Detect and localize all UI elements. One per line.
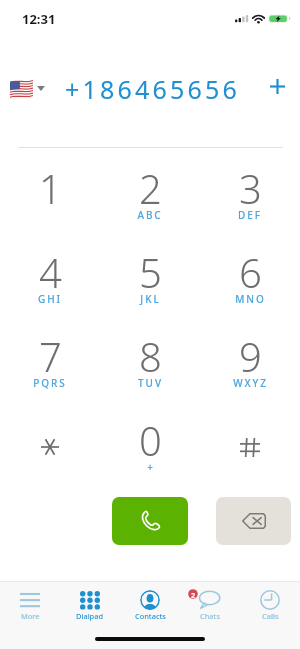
staticText: Chats [200, 611, 220, 621]
staticText: 2 [139, 161, 162, 215]
button[interactable]: 6 [200, 245, 300, 329]
staticText: 2 [191, 590, 196, 600]
staticText: DEF [238, 208, 262, 222]
staticText: ABC [137, 208, 163, 222]
staticText: 0 [139, 413, 162, 467]
staticText: PQRS [33, 376, 67, 390]
button[interactable] [0, 413, 100, 497]
staticText: GHI [38, 292, 62, 306]
staticText: More [21, 611, 40, 621]
button[interactable]: 3 [200, 161, 300, 245]
staticText: Calls [262, 611, 279, 621]
staticText: 5 [139, 245, 162, 299]
staticText: WXYZ [233, 376, 268, 390]
staticText: +186465656 [65, 72, 241, 106]
button[interactable]: 7 [0, 329, 100, 413]
button[interactable]: Call [112, 497, 188, 545]
button[interactable]: 1 [0, 161, 100, 245]
button[interactable]: Backspace [216, 497, 291, 545]
button[interactable] [200, 413, 300, 497]
staticText: TUV [138, 376, 163, 390]
staticText: JKL [140, 292, 161, 306]
staticText: Dialpad [76, 611, 104, 621]
button[interactable]: 0 [100, 413, 200, 497]
button[interactable]: 4 [0, 245, 100, 329]
button[interactable]: 2 [180, 589, 240, 629]
button[interactable]: Dialpad [60, 589, 120, 629]
staticText: 3 [239, 161, 262, 215]
button[interactable]: More [0, 589, 60, 629]
button[interactable]: Add contact [264, 73, 290, 99]
staticText: Contacts [135, 611, 166, 621]
staticText: 12:31 [22, 10, 56, 28]
button[interactable]: 5 [100, 245, 200, 329]
staticText: MNO [235, 292, 266, 306]
button[interactable]: Calls [240, 589, 300, 629]
button[interactable]: 2 [100, 161, 200, 245]
staticText: + [147, 460, 155, 474]
button[interactable]: Contacts [120, 589, 180, 629]
button[interactable] [6, 76, 49, 101]
button[interactable]: 9 [200, 329, 300, 413]
button[interactable]: 8 [100, 329, 200, 413]
staticText: 1 [39, 161, 62, 215]
staticText: 4 [39, 245, 62, 299]
staticText: 7 [39, 329, 62, 383]
staticText: 6 [239, 245, 262, 299]
staticText: 8 [139, 329, 162, 383]
staticText: 9 [239, 329, 262, 383]
